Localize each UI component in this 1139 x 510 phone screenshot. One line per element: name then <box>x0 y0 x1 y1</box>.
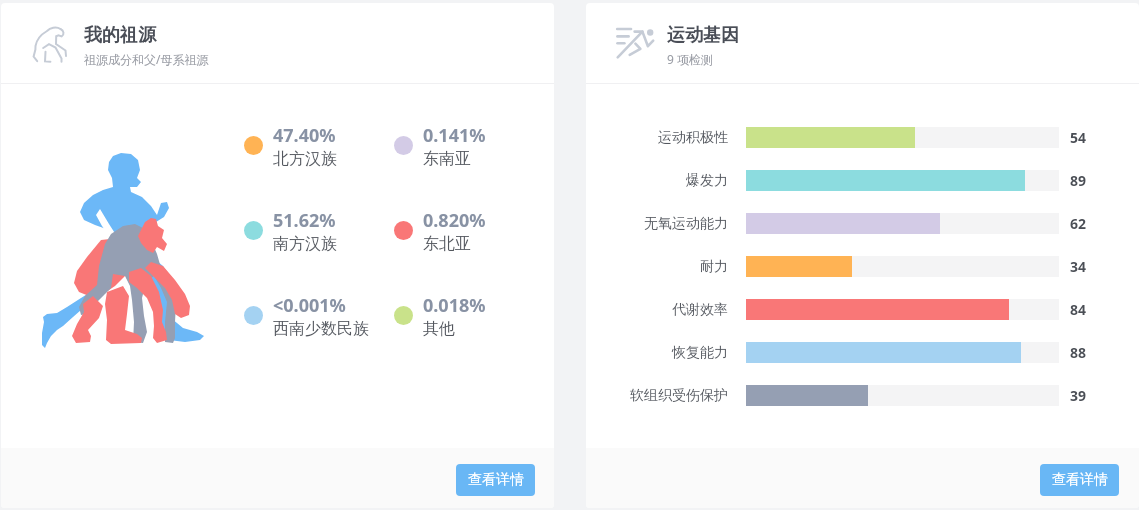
staticText: 51.62% <box>273 208 336 233</box>
button[interactable]: 无氧运动能力 <box>586 202 1139 245</box>
staticText: 北方汉族 <box>273 149 337 169</box>
staticText: 0.820% <box>423 208 486 233</box>
staticText: 代谢效率 <box>600 301 728 319</box>
staticText: <0.001% <box>273 293 346 318</box>
staticText: 东南亚 <box>423 149 471 169</box>
staticText: 我的祖源 <box>84 24 156 47</box>
staticText: 西南少数民族 <box>273 319 369 339</box>
staticText: 47.40% <box>273 123 336 148</box>
staticText: 9 项检测 <box>667 51 713 67</box>
staticText: 运动基因 <box>667 24 739 47</box>
button[interactable]: 查看详情 <box>1040 464 1119 496</box>
button[interactable]: 爆发力 <box>586 159 1139 202</box>
staticText: 84 <box>1070 300 1087 319</box>
button[interactable]: 0.141% <box>394 129 486 175</box>
staticText: 54 <box>1070 128 1087 147</box>
staticText: 0.141% <box>423 123 486 148</box>
staticText: 祖源成分和父/母系祖源 <box>84 51 209 67</box>
button[interactable]: 0.820% <box>394 214 486 260</box>
staticText: 运动积极性 <box>600 129 728 147</box>
button[interactable]: 耐力 <box>586 245 1139 288</box>
staticText: 无氧运动能力 <box>600 215 728 233</box>
staticText: 东北亚 <box>423 234 471 254</box>
button[interactable]: 恢复能力 <box>586 331 1139 374</box>
button[interactable]: 软组织受伤保护 <box>586 374 1139 417</box>
staticText: 39 <box>1070 386 1087 405</box>
button[interactable]: 查看详情 <box>456 464 535 496</box>
staticText: 89 <box>1070 171 1087 190</box>
button[interactable]: 代谢效率 <box>586 288 1139 331</box>
button[interactable]: <0.001% <box>244 299 369 345</box>
button[interactable]: 运动积极性 <box>586 116 1139 159</box>
button[interactable]: 0.018% <box>394 299 486 345</box>
staticText: 34 <box>1070 257 1087 276</box>
staticText: 88 <box>1070 343 1087 362</box>
staticText: 查看详情 <box>1052 471 1108 489</box>
staticText: 0.018% <box>423 293 486 318</box>
staticText: 软组织受伤保护 <box>600 387 728 405</box>
staticText: 查看详情 <box>468 471 524 489</box>
button[interactable]: 51.62% <box>244 214 337 260</box>
staticText: 62 <box>1070 214 1087 233</box>
button[interactable]: 47.40% <box>244 129 337 175</box>
staticText: 恢复能力 <box>600 344 728 362</box>
staticText: 耐力 <box>600 258 728 276</box>
staticText: 其他 <box>423 319 455 339</box>
staticText: 爆发力 <box>600 172 728 190</box>
staticText: 南方汉族 <box>273 234 337 254</box>
